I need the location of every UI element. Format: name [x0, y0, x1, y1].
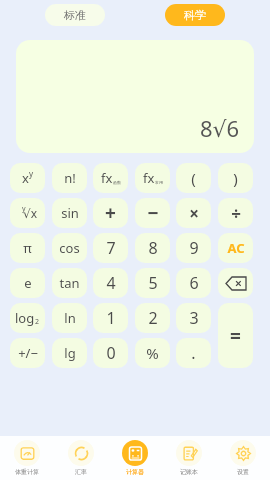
button[interactable]: Delete [218, 268, 253, 298]
staticText: 常用 [155, 180, 163, 185]
staticText: y [29, 168, 34, 179]
staticText: sin [61, 204, 79, 222]
button[interactable]: % [135, 338, 170, 368]
button[interactable]: x [10, 163, 45, 193]
button[interactable]: ln [52, 303, 87, 333]
staticText: fx [143, 169, 155, 187]
button[interactable]: cos [52, 233, 87, 263]
staticText: n! [64, 169, 76, 187]
button[interactable]: 计算器 [108, 436, 162, 480]
staticText: tan [59, 274, 80, 292]
button[interactable]: 6 [176, 268, 211, 298]
staticText: lg [64, 344, 76, 362]
button[interactable]: fx [93, 163, 128, 193]
button[interactable]: = [218, 303, 253, 368]
staticText: 9 [189, 237, 199, 259]
staticText: 标准 [64, 8, 86, 22]
button[interactable]: sin [52, 198, 87, 228]
button[interactable]: y [10, 198, 45, 228]
staticText: % [146, 343, 159, 363]
button[interactable]: +/− [10, 338, 45, 368]
button[interactable]: n! [52, 163, 87, 193]
button[interactable]: 标准 [45, 4, 105, 26]
staticText: 科学 [184, 8, 206, 22]
button[interactable]: 7 [93, 233, 128, 263]
button[interactable]: fx [135, 163, 170, 193]
button[interactable]: π [10, 233, 45, 263]
button[interactable]: 5 [135, 268, 170, 298]
button[interactable]: 8 [135, 233, 170, 263]
button[interactable]: 9 [176, 233, 211, 263]
staticText: 设置 [237, 468, 249, 476]
staticText: 8 [148, 237, 158, 259]
staticText: 汇率 [75, 468, 87, 476]
button[interactable]: × [176, 198, 211, 228]
staticText: 6 [189, 272, 199, 294]
button[interactable]: 0 [93, 338, 128, 368]
staticText: 2 [35, 317, 40, 327]
staticText: 2 [148, 307, 158, 329]
staticText: cos [59, 239, 80, 257]
button[interactable]: ( [176, 163, 211, 193]
button[interactable]: ) [218, 163, 253, 193]
button[interactable]: lg [52, 338, 87, 368]
staticText: + [105, 200, 116, 226]
button[interactable]: tan [52, 268, 87, 298]
button[interactable]: 体重计算 [0, 436, 54, 480]
button[interactable]: + [93, 198, 128, 228]
staticText: 8√6 [200, 113, 240, 143]
staticText: +/− [18, 344, 38, 362]
button[interactable]: 3 [176, 303, 211, 333]
staticText: = [230, 323, 241, 349]
button[interactable]: log [10, 303, 45, 333]
staticText: ( [191, 168, 196, 188]
staticText: √x [23, 205, 37, 221]
staticText: − [147, 200, 159, 226]
staticText: 1 [106, 307, 116, 329]
button[interactable]: AC [218, 233, 253, 263]
button[interactable]: − [135, 198, 170, 228]
button[interactable]: 4 [93, 268, 128, 298]
staticText: π [23, 239, 32, 257]
staticText: ÷ [231, 202, 241, 225]
staticText: ln [64, 309, 76, 327]
staticText: 7 [106, 237, 116, 259]
staticText: 体重计算 [15, 468, 39, 476]
button[interactable]: e [10, 268, 45, 298]
staticText: 记账本 [180, 468, 198, 476]
button[interactable]: . [176, 338, 211, 368]
staticText: 计算器 [126, 468, 144, 476]
staticText: 函数 [113, 180, 121, 185]
staticText: 5 [148, 272, 158, 294]
staticText: y [22, 204, 26, 214]
staticText: 3 [189, 307, 199, 329]
staticText: . [191, 342, 196, 364]
button[interactable]: 设置 [216, 436, 270, 480]
button[interactable]: 科学 [165, 4, 225, 26]
staticText: x [22, 169, 29, 187]
staticText: 4 [106, 272, 116, 294]
staticText: × [189, 202, 199, 225]
staticText: log [15, 309, 35, 327]
button[interactable]: 1 [93, 303, 128, 333]
staticText: ) [233, 168, 238, 188]
staticText: AC [227, 239, 245, 257]
staticText: fx [101, 169, 113, 187]
staticText: 0 [106, 342, 116, 364]
button[interactable]: 记账本 [162, 436, 216, 480]
staticText: e [24, 274, 32, 292]
button[interactable]: ÷ [218, 198, 253, 228]
button[interactable]: 汇率 [54, 436, 108, 480]
button[interactable]: 2 [135, 303, 170, 333]
